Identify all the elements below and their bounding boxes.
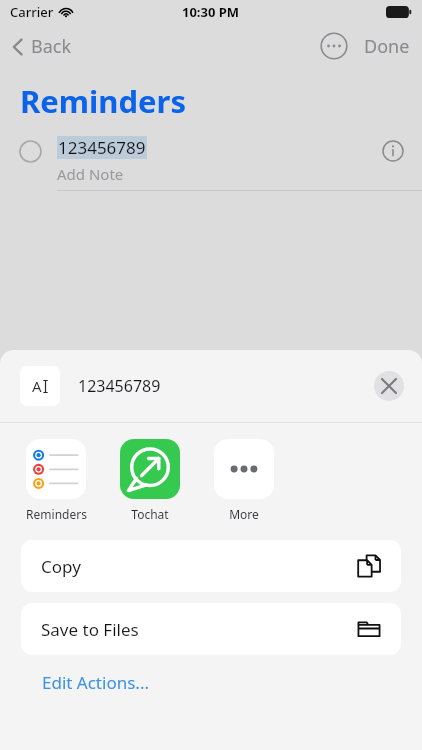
staticText: Save to Files (41, 618, 139, 641)
staticText: More (229, 506, 259, 522)
staticText: Add Note (57, 164, 124, 184)
button[interactable]: Close (374, 371, 404, 401)
button[interactable]: More (208, 439, 280, 522)
button[interactable]: Tochat (114, 439, 186, 522)
button[interactable]: Save to Files (21, 603, 401, 655)
button[interactable]: Copy (21, 540, 401, 592)
button[interactable]: Reminders (20, 439, 92, 522)
staticText: Done (364, 34, 410, 59)
staticText: Tochat (131, 506, 169, 522)
staticText: Reminders (26, 506, 87, 522)
button[interactable]: More options (320, 32, 348, 60)
button[interactable]: 123456789 (58, 136, 146, 159)
staticText: Reminders (20, 80, 187, 122)
staticText: Carrier (10, 3, 54, 21)
button[interactable]: Back (10, 34, 72, 59)
staticText: Copy (41, 555, 81, 578)
button[interactable]: Edit Actions... (42, 671, 149, 694)
button[interactable]: Details (382, 140, 404, 162)
staticText: A (32, 376, 42, 396)
staticText: 123456789 (58, 136, 146, 159)
staticText: Edit Actions... (42, 671, 149, 694)
button[interactable]: Toggle complete (19, 140, 42, 163)
staticText: 10:30 PM (182, 3, 240, 21)
button[interactable]: Done (364, 34, 410, 59)
staticText: Back (31, 34, 72, 59)
staticText: 123456789 (78, 375, 161, 397)
